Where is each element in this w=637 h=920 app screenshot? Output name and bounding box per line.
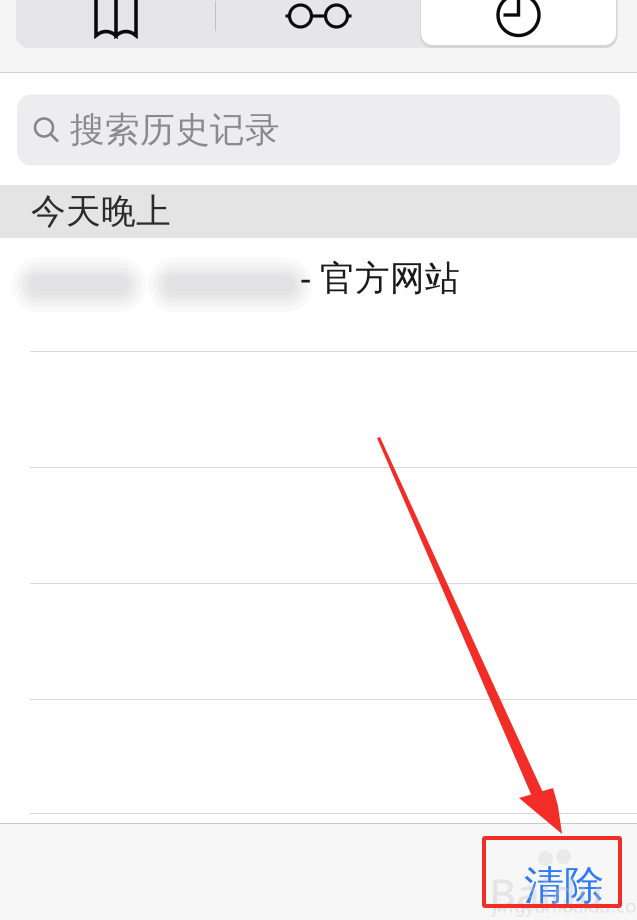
button[interactable]: 清除 bbox=[500, 823, 637, 920]
button[interactable]: History entry bbox=[0, 584, 637, 699]
button[interactable]: History entry bbox=[0, 700, 637, 813]
staticText: 搜索历史记录 bbox=[70, 109, 280, 151]
button[interactable]: Reading List bbox=[216, 0, 421, 48]
staticText: - 官方网站 bbox=[300, 254, 460, 300]
staticText: 清除 bbox=[524, 861, 604, 910]
staticText: 今天晚上 bbox=[31, 190, 171, 233]
button[interactable]: Bookmarks bbox=[16, 0, 216, 48]
button[interactable]: History entry bbox=[0, 352, 637, 467]
button[interactable]: - 官方网站 bbox=[0, 238, 637, 351]
staticText: jingyan.baidu.com bbox=[492, 893, 637, 918]
staticText: Baidu bbox=[489, 866, 603, 920]
button[interactable]: History entry bbox=[0, 468, 637, 583]
button[interactable]: History bbox=[421, 0, 618, 48]
